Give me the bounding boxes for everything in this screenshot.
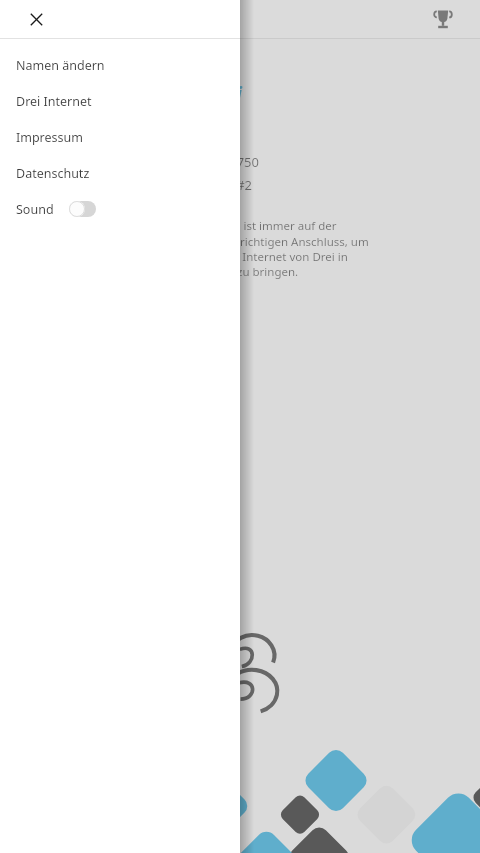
staticText: Toni [203,80,242,107]
staticText: Drei Internet [16,93,92,110]
staticText: Toni, der Spiegel, ist immer auf der Suc… [148,218,369,279]
button[interactable]: Sound [0,191,240,227]
staticText: Deine Punkte: 750 [148,153,259,171]
staticText: Dein Ranking: #2 [148,176,253,194]
button[interactable]: Menü schließen [20,3,52,35]
button[interactable]: Bestenliste [428,4,458,34]
button[interactable]: Namen ändern [0,47,240,83]
staticText: Impressum [16,129,83,146]
staticText: Sound [16,201,54,218]
staticText: Namen ändern [16,57,105,74]
button[interactable]: Impressum [0,119,240,155]
button[interactable]: Datenschutz [0,155,240,191]
button[interactable]: Sound ein- oder ausschalten [69,199,105,219]
button[interactable]: Drei Internet [0,83,240,119]
staticText: Datenschutz [16,165,90,182]
